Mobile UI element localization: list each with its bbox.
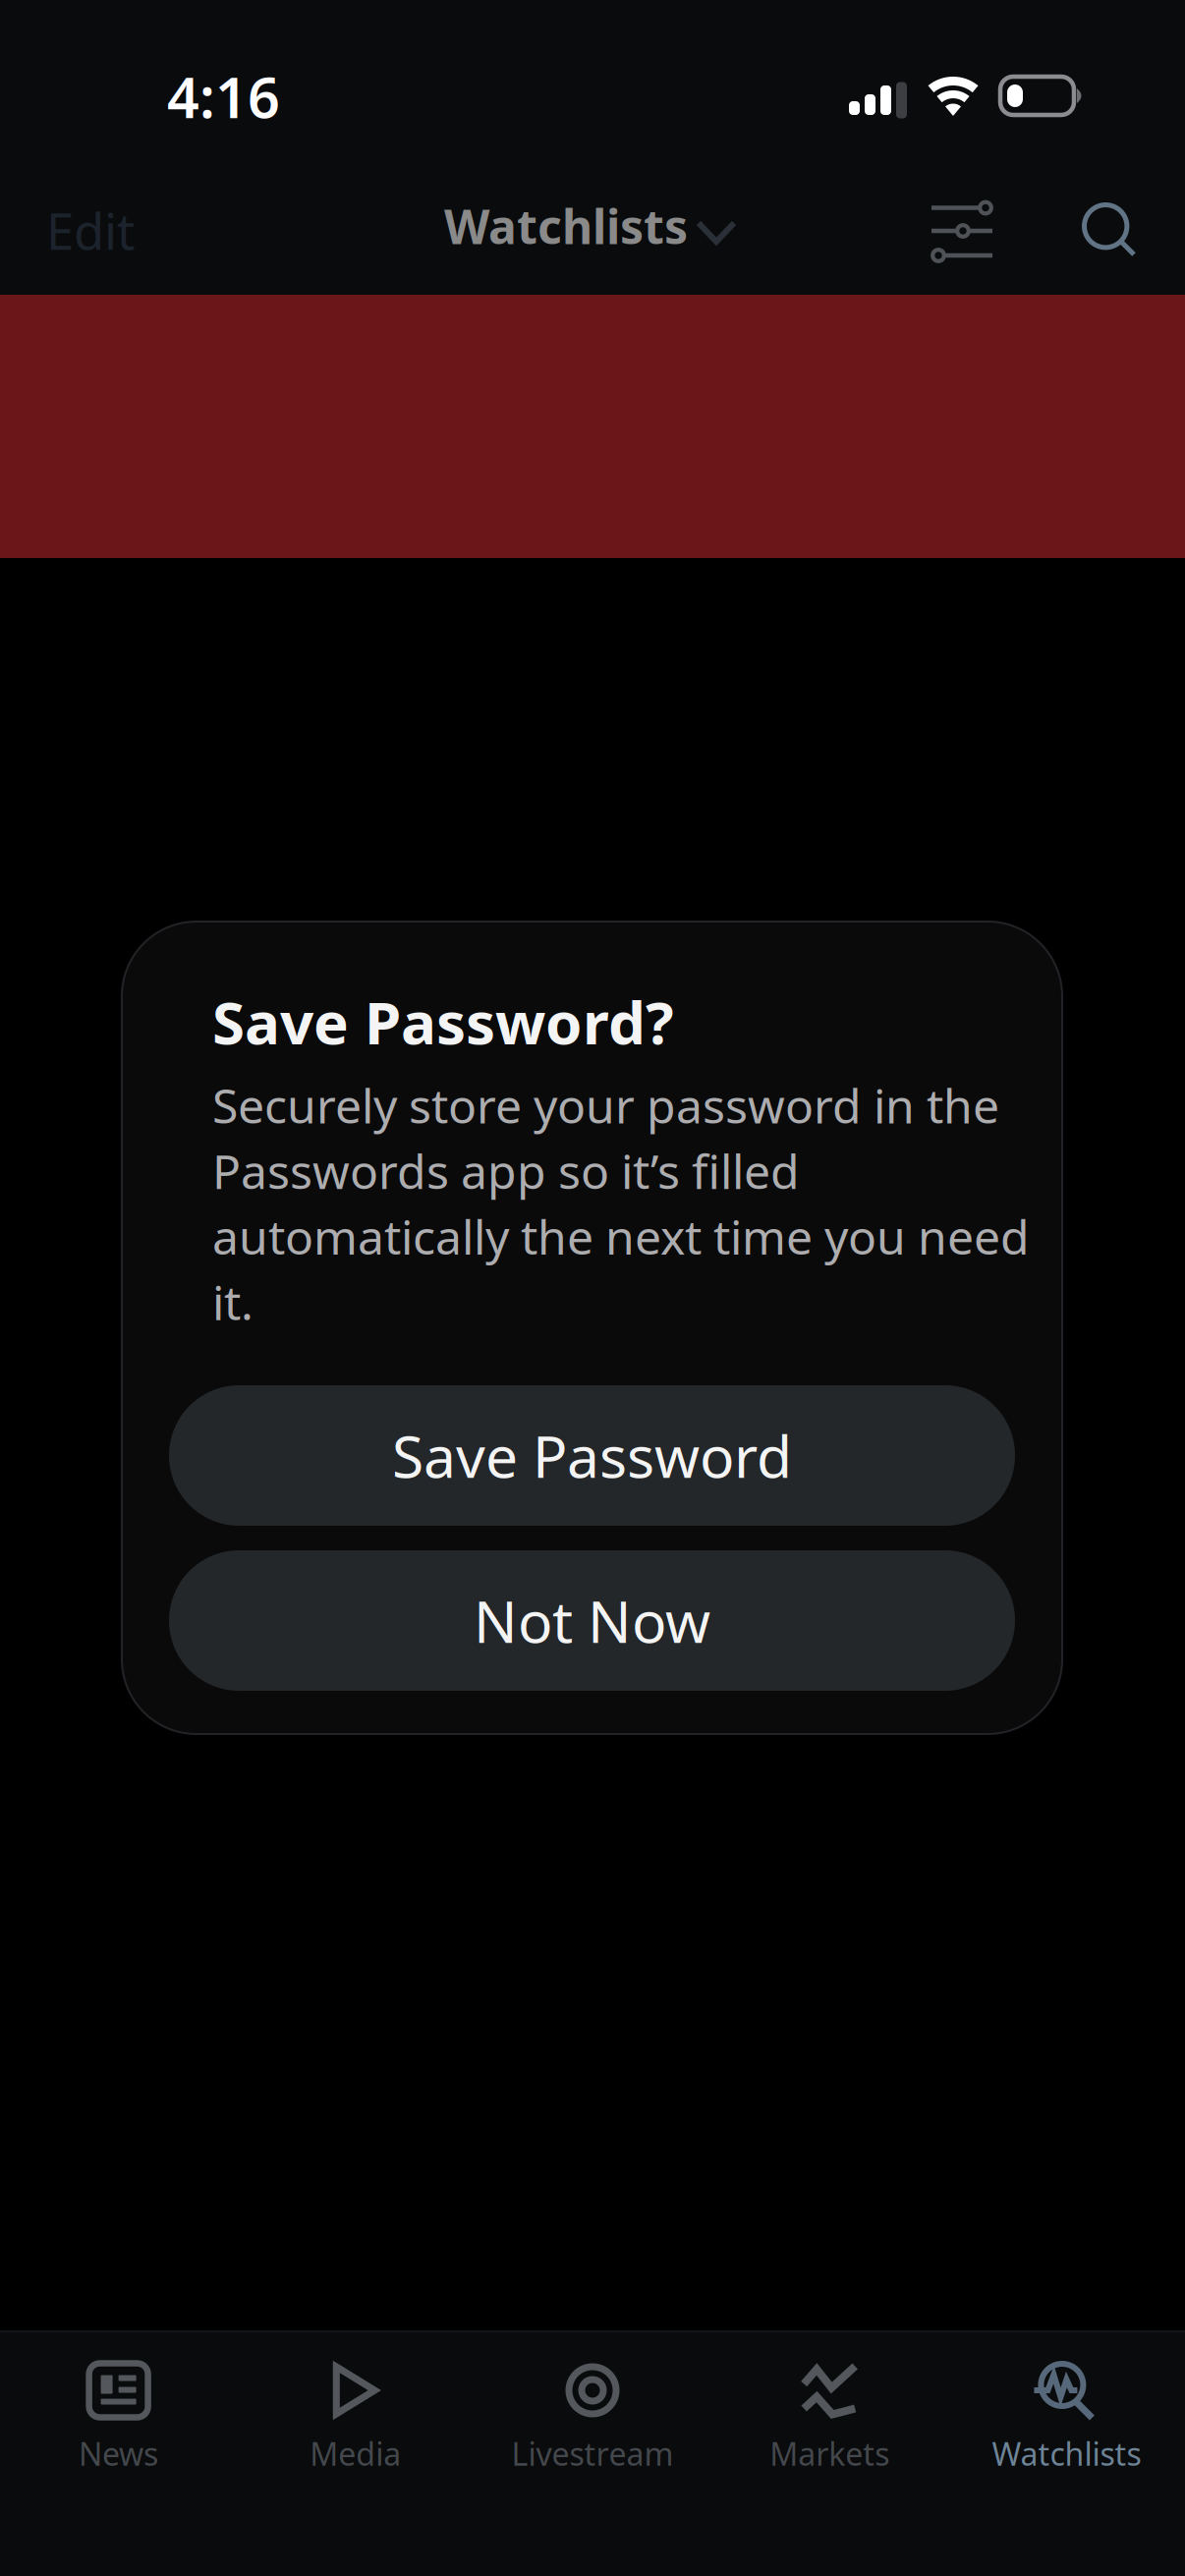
staticText: Edit [46, 197, 135, 264]
staticText: Watchlists [444, 195, 688, 257]
button[interactable]: Filter [931, 200, 996, 263]
button[interactable]: Markets [711, 2332, 948, 2480]
button[interactable]: Search [1082, 202, 1144, 265]
button[interactable]: Not Now [169, 1550, 1015, 1691]
button[interactable]: Watchlists [948, 2332, 1185, 2480]
staticText: Watchlists [992, 2433, 1141, 2474]
staticText: Save Password? [212, 982, 674, 1061]
staticText: Securely store your password in the Pass… [212, 1074, 1030, 1333]
staticText: Livestream [511, 2433, 674, 2474]
button[interactable]: Edit [46, 197, 135, 264]
button[interactable]: Media [237, 2332, 474, 2480]
button[interactable]: News [0, 2332, 237, 2480]
staticText: Media [310, 2433, 401, 2474]
staticText: News [79, 2433, 158, 2474]
button[interactable]: Save Password [169, 1385, 1015, 1526]
button[interactable]: Watchlists [444, 195, 735, 257]
staticText: Not Now [474, 1582, 710, 1659]
staticText: Markets [770, 2433, 889, 2474]
staticText: Save Password [392, 1417, 792, 1494]
staticText: 4:16 [167, 59, 280, 134]
button[interactable]: Livestream [474, 2332, 711, 2480]
